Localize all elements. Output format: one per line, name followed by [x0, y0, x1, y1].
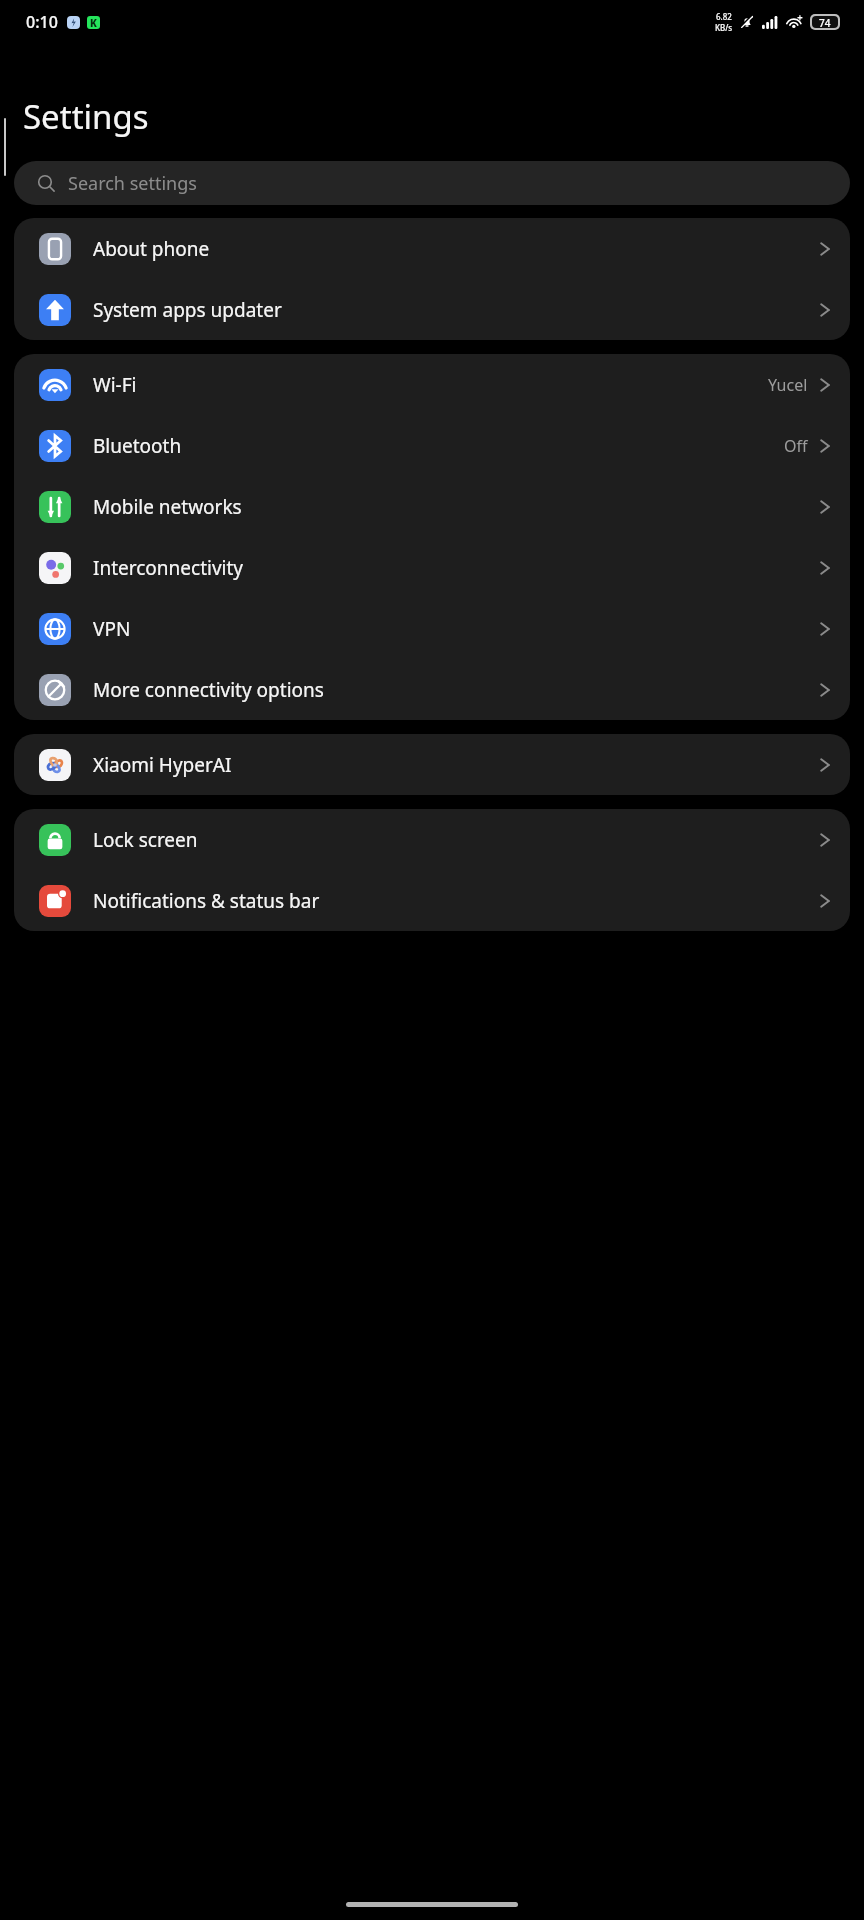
button[interactable]: About phone	[14, 218, 850, 279]
staticText: Mobile networks	[93, 494, 820, 520]
button[interactable]: VPN	[14, 598, 850, 659]
button[interactable]: Interconnectivity	[14, 537, 850, 598]
staticText: Search settings	[68, 171, 197, 196]
staticText: 6.82	[716, 11, 732, 22]
staticText: Lock screen	[93, 827, 820, 853]
staticText: Interconnectivity	[93, 555, 820, 581]
staticText: More connectivity options	[93, 677, 820, 703]
staticText: 74	[819, 16, 831, 28]
button[interactable]: Xiaomi HyperAI	[14, 734, 850, 795]
staticText: KB/s	[715, 22, 733, 33]
button[interactable]: Wi-Fi	[14, 354, 850, 415]
button[interactable]: Search settings	[14, 161, 850, 205]
staticText: Yucel	[768, 374, 808, 396]
button[interactable]: Mobile networks	[14, 476, 850, 537]
staticText: K	[90, 16, 97, 29]
staticText: About phone	[93, 236, 820, 262]
staticText: 0:10	[26, 11, 58, 33]
staticText: Notifications & status bar	[93, 888, 820, 914]
staticText: System apps updater	[93, 297, 820, 323]
button[interactable]: Bluetooth	[14, 415, 850, 476]
staticText: VPN	[93, 616, 820, 642]
staticText: Settings	[23, 94, 149, 139]
button[interactable]: System apps updater	[14, 279, 850, 340]
button[interactable]: Lock screen	[14, 809, 850, 870]
button[interactable]: Notifications & status bar	[14, 870, 850, 931]
button[interactable]: More connectivity options	[14, 659, 850, 720]
staticText: Bluetooth	[93, 433, 784, 459]
staticText: Wi-Fi	[93, 372, 768, 398]
staticText: Xiaomi HyperAI	[93, 752, 820, 778]
staticText: Off	[784, 435, 808, 457]
